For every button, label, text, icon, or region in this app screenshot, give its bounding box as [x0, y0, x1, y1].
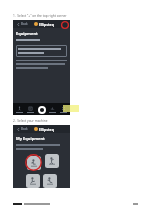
- button[interactable]: Tab 1: [26, 106, 35, 113]
- button[interactable]: Equipment 0: [27, 156, 41, 170]
- button[interactable]: Start workout: [37, 105, 46, 114]
- staticText: My Equipment: [16, 136, 45, 141]
- button[interactable]: Back: [15, 21, 21, 27]
- button[interactable]: Back: [15, 126, 21, 132]
- button[interactable]: [16, 45, 67, 57]
- staticText: Ellipsteq: [39, 22, 54, 27]
- button[interactable]: Tab 0: [15, 106, 24, 113]
- staticText: 2. Select your machine: [13, 119, 48, 123]
- button[interactable]: Equipment 1: [45, 154, 59, 168]
- button[interactable]: Equipment 2: [26, 174, 40, 188]
- button[interactable]: Equipment 3: [43, 174, 57, 188]
- button[interactable]: Tab 3: [48, 106, 57, 113]
- button[interactable]: Back: [21, 127, 28, 131]
- button[interactable]: Tab 4: [59, 106, 68, 113]
- staticText: Equipment: [16, 31, 38, 36]
- staticText: 1. Select "+" on the top right corner: [13, 14, 67, 18]
- staticText: Ellipsteq: [39, 127, 54, 132]
- button[interactable]: Back: [21, 22, 28, 26]
